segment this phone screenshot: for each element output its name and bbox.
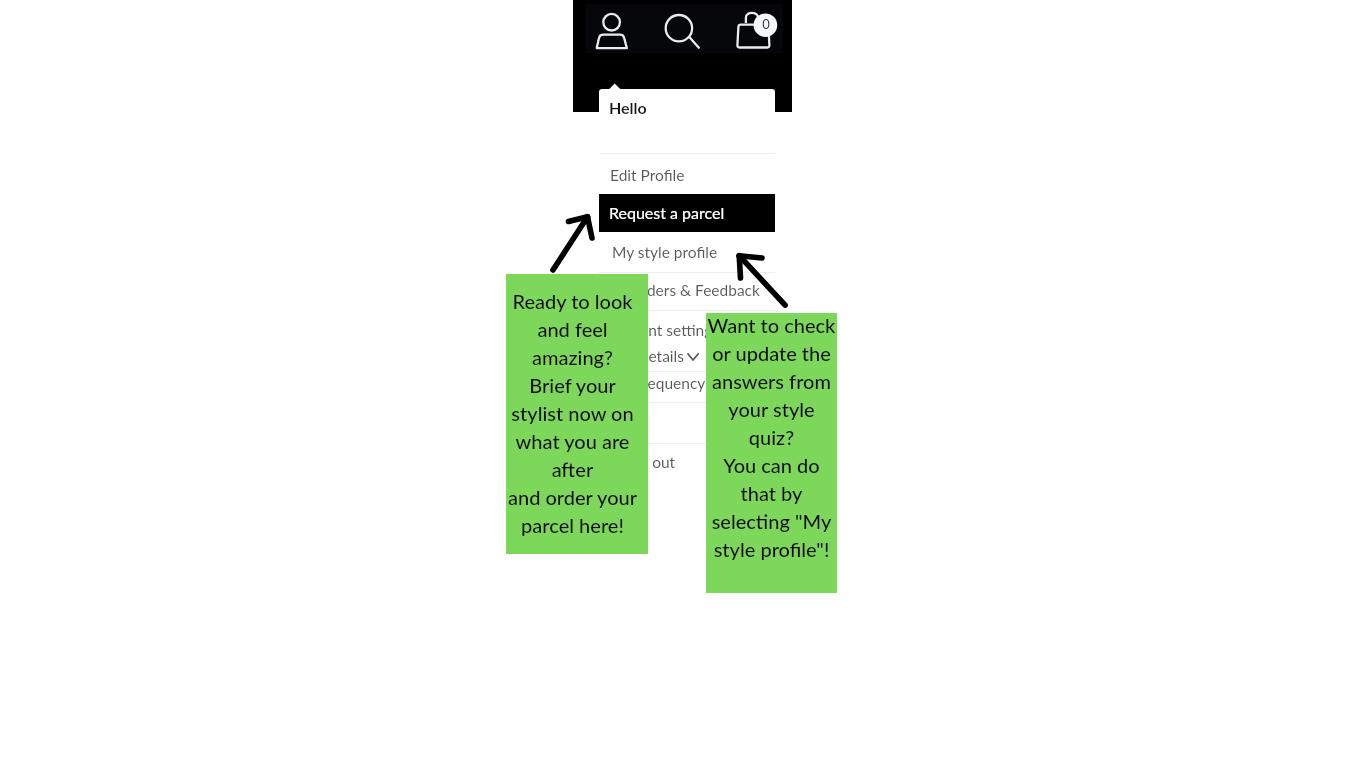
staticText: 0 <box>754 16 778 32</box>
button[interactable]: My style profile <box>599 237 775 267</box>
staticText: Ready to look and feel amazing? Brief yo… <box>506 289 639 537</box>
button[interactable]: Search <box>662 10 702 52</box>
staticText: My frequency <box>611 374 706 393</box>
button[interactable]: My orders & Feedback <box>599 275 775 305</box>
staticText: Want to check or update the answers from… <box>706 313 837 561</box>
staticText: Account settings <box>606 321 719 340</box>
button[interactable]: Account settings <box>599 315 775 345</box>
staticText: Hello <box>609 98 647 117</box>
staticText: Log out <box>624 453 676 472</box>
staticText: My details <box>614 347 684 366</box>
staticText: My orders & Feedback <box>607 281 760 300</box>
button[interactable]: My details <box>599 341 775 371</box>
button[interactable]: Edit Profile <box>599 160 775 190</box>
button[interactable]: My frequency <box>599 368 775 398</box>
button[interactable]: Log out <box>599 447 775 477</box>
button[interactable]: Account <box>595 10 629 52</box>
button[interactable]: Shopping bag <box>734 8 780 52</box>
staticText: Edit Profile <box>610 166 685 185</box>
staticText: Request a parcel <box>609 203 725 222</box>
button[interactable]: Request a parcel <box>599 194 775 232</box>
staticText: My style profile <box>612 243 718 262</box>
